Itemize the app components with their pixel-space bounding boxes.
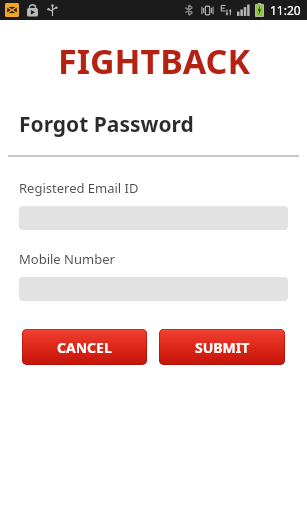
staticText: 11:20: [270, 2, 301, 18]
staticText: FIGHTBACK: [58, 38, 250, 84]
button[interactable]: CANCEL: [22, 329, 147, 365]
staticText: SUBMIT: [195, 338, 250, 357]
staticText: Mobile Number: [19, 250, 115, 268]
staticText: Forgot Password: [19, 110, 194, 139]
staticText: Registered Email ID: [19, 179, 139, 197]
button[interactable]: SUBMIT: [159, 329, 285, 365]
staticText: CANCEL: [57, 338, 112, 357]
